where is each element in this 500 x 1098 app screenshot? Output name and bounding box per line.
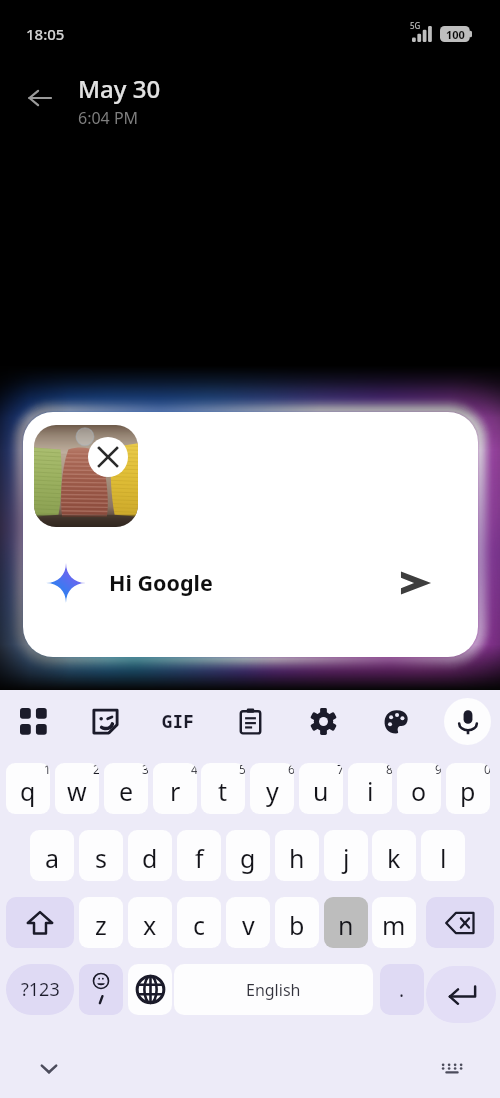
staticText: 4 — [191, 763, 197, 777]
staticText: w — [67, 774, 87, 808]
button[interactable]: k — [372, 830, 416, 881]
button[interactable]: h — [275, 830, 319, 881]
button[interactable]: v — [226, 897, 270, 948]
staticText: 6:04 PM — [78, 107, 139, 129]
staticText: n — [338, 908, 354, 942]
button[interactable]: q — [6, 763, 50, 814]
button[interactable]: b — [275, 897, 319, 948]
staticText: 18:05 — [26, 24, 65, 44]
staticText: 9 — [435, 763, 441, 777]
staticText: u — [313, 774, 329, 808]
button[interactable]: g — [226, 830, 270, 881]
staticText: g — [240, 841, 256, 875]
staticText: r — [170, 774, 181, 808]
button[interactable]: z — [79, 897, 123, 948]
button[interactable]: Apps — [10, 698, 56, 744]
staticText: English — [246, 979, 301, 1001]
button[interactable]: Backspace — [426, 897, 494, 948]
staticText: c — [193, 908, 206, 942]
staticText: May 30 — [78, 72, 161, 105]
staticText: Hi Google — [109, 568, 213, 597]
staticText: GIF — [162, 710, 195, 733]
staticText: 100 — [446, 27, 465, 42]
staticText: a — [45, 841, 60, 875]
staticText: b — [289, 908, 305, 942]
button[interactable]: Settings — [300, 698, 346, 744]
button[interactable]: Remove image — [88, 437, 128, 477]
button[interactable]: u — [299, 763, 343, 814]
staticText: j — [343, 841, 350, 875]
button[interactable]: x — [128, 897, 172, 948]
button[interactable]: Themes — [373, 698, 419, 744]
staticText: i — [367, 774, 374, 808]
button[interactable]: Emoji — [79, 964, 123, 1015]
button[interactable]: a — [30, 830, 74, 881]
staticText: 1 — [44, 763, 50, 777]
button[interactable]: Clipboard — [227, 698, 273, 744]
staticText: . — [399, 977, 405, 1003]
button[interactable]: Send — [392, 559, 440, 607]
staticText: s — [95, 841, 107, 875]
button[interactable]: c — [177, 897, 221, 948]
button[interactable]: j — [324, 830, 368, 881]
button[interactable]: ?123 — [6, 964, 74, 1015]
staticText: y — [266, 774, 279, 808]
button[interactable]: r — [153, 763, 197, 814]
staticText: d — [142, 841, 158, 875]
staticText: 8 — [386, 763, 392, 777]
button[interactable]: p — [446, 763, 490, 814]
button[interactable]: Change language — [128, 964, 172, 1015]
staticText: v — [242, 908, 255, 942]
staticText: l — [440, 841, 447, 875]
button[interactable]: i — [348, 763, 392, 814]
button[interactable]: Back — [20, 78, 60, 118]
staticText: f — [195, 841, 204, 875]
button[interactable]: w — [55, 763, 99, 814]
staticText: 3 — [142, 763, 148, 777]
staticText: q — [20, 774, 36, 808]
button[interactable]: Shift — [6, 897, 74, 948]
button[interactable]: n — [324, 897, 368, 948]
button[interactable]: o — [397, 763, 441, 814]
button[interactable]: m — [372, 897, 416, 948]
staticText: 5 — [239, 763, 245, 777]
button[interactable]: f — [177, 830, 221, 881]
button[interactable]: d — [128, 830, 172, 881]
staticText: o — [411, 774, 427, 808]
button[interactable]: Voice input — [444, 698, 491, 745]
staticText: p — [460, 774, 476, 808]
staticText: z — [95, 908, 107, 942]
staticText: 5G — [410, 20, 421, 31]
button[interactable]: GIF — [155, 698, 201, 744]
staticText: 7 — [337, 763, 343, 777]
staticText: 2 — [93, 763, 99, 777]
button[interactable]: Hide keyboard — [28, 1048, 69, 1089]
staticText: x — [143, 908, 157, 942]
button[interactable]: Keyboard settings — [431, 1048, 472, 1089]
button[interactable]: s — [79, 830, 123, 881]
staticText: h — [289, 841, 305, 875]
button[interactable]: t — [201, 763, 245, 814]
staticText: 6 — [288, 763, 294, 777]
button[interactable]: Enter — [426, 966, 496, 1023]
button[interactable]: Stickers — [82, 698, 128, 744]
staticText: e — [119, 774, 134, 808]
button[interactable]: l — [421, 830, 465, 881]
staticText: m — [382, 908, 406, 942]
staticText: 0 — [484, 763, 490, 777]
staticText: ?123 — [21, 977, 60, 1002]
button[interactable]: English — [174, 964, 373, 1015]
button[interactable]: e — [104, 763, 148, 814]
button[interactable]: y — [250, 763, 294, 814]
staticText: k — [387, 841, 401, 875]
button[interactable]: . — [380, 964, 424, 1015]
staticText: t — [218, 774, 228, 808]
